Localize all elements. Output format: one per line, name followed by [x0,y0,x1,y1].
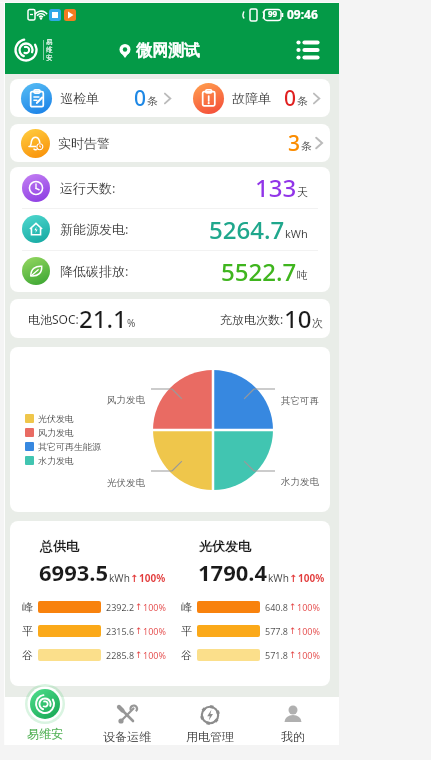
staticText: ↑ [289,650,297,660]
staticText: 100% [297,601,320,613]
staticText: 设备运维 [103,729,151,744]
staticText: 条 [301,139,312,153]
staticText: ↑ [135,650,143,660]
staticText: kWh [285,226,308,241]
staticText: 充放电次数: [220,311,284,327]
staticText: 10 [284,302,312,335]
button[interactable]: 运行天数: [10,167,330,292]
staticText: 条 [297,94,308,108]
staticText: 易 [46,38,53,46]
staticText: 次 [312,316,323,330]
staticText: 风力发电 [38,427,74,438]
staticText: 0 [134,84,147,113]
staticText: 100% [298,571,325,585]
staticText: 微网测试 [136,41,200,61]
staticText: 1790.4 [198,557,268,587]
staticText: 实时告警 [58,135,110,151]
staticText: 天 [297,185,308,199]
staticText: 100% [297,649,320,661]
staticText: ↑ [289,626,297,636]
staticText: kWh [268,571,289,585]
button[interactable]: 光伏发电 [10,347,330,512]
staticText: 风力发电 [107,394,145,406]
staticText: 故障单 [232,90,271,106]
staticText: 水力发电 [38,455,74,466]
button[interactable]: 总供电 [10,521,330,686]
staticText: 维 [46,46,53,54]
staticText: 100% [139,571,166,585]
staticText: 21.1 [79,302,127,335]
staticText: 100% [143,649,166,661]
staticText: 吨 [297,268,308,282]
staticText: 条 [147,94,158,108]
staticText: 峰 [22,600,33,614]
staticText: ↑ [289,573,298,585]
button[interactable]: 巡检单 [10,79,330,117]
staticText: 09:46 [287,6,318,22]
staticText: 光伏发电 [199,538,251,554]
staticText: 我的 [281,729,305,744]
staticText: 99 [268,8,278,19]
staticText: 用电管理 [186,729,234,744]
staticText: 巡检单 [60,90,99,106]
staticText: 电池SOC: [28,311,79,327]
button[interactable]: 易维安 [12,684,78,746]
staticText: 0 [284,84,297,113]
staticText: 新能源发电: [60,220,129,238]
button[interactable]: 实时告警 [10,124,330,162]
staticText: 100% [143,601,166,613]
staticText: 其它可再生能源 [38,441,101,452]
button[interactable]: 电池SOC: [10,299,330,338]
button[interactable]: 我的 [252,697,334,745]
staticText: 5522.7 [221,255,297,288]
staticText: 640.8 [265,601,289,613]
button[interactable]: 用电管理 [169,697,251,745]
staticText: 总供电 [40,538,79,554]
staticText: % [127,316,136,330]
staticText: 平 [181,624,192,638]
staticText: kWh [109,571,130,585]
staticText: 水力发电 [281,476,319,488]
button[interactable]: 故障单 [182,79,330,117]
staticText: 577.8 [265,625,289,637]
staticText: 运行天数: [60,179,116,197]
staticText: 峰 [181,600,192,614]
staticText: ↑ [130,573,139,585]
staticText: 2285.8 [106,649,135,661]
staticText: 光伏发电 [107,477,145,489]
staticText: 谷 [181,648,192,662]
staticText: 3 [288,129,301,158]
staticText: 安 [46,54,53,62]
staticText: 2315.6 [106,625,135,637]
staticText: 133 [255,171,297,204]
staticText: 2392.2 [106,601,135,613]
staticText: 100% [143,625,166,637]
staticText: ↑ [135,626,143,636]
staticText: ↑ [135,602,143,612]
button[interactable]: 巡检单 [10,79,182,117]
staticText: 571.8 [265,649,289,661]
staticText: 平 [22,624,33,638]
button[interactable]: 设备运维 [86,697,168,745]
staticText: 5264.7 [209,213,285,246]
staticText: 光伏发电 [38,413,74,424]
staticText: 其它可再 [281,395,319,407]
staticText: 易维安 [27,726,63,741]
staticText: 谷 [22,648,33,662]
staticText: ↑ [289,602,297,612]
staticText: 降低碳排放: [60,262,129,280]
staticText: 100% [297,625,320,637]
button[interactable]: 微网测试 [117,27,200,74]
button[interactable] [294,39,320,61]
staticText: 6993.5 [39,557,109,587]
